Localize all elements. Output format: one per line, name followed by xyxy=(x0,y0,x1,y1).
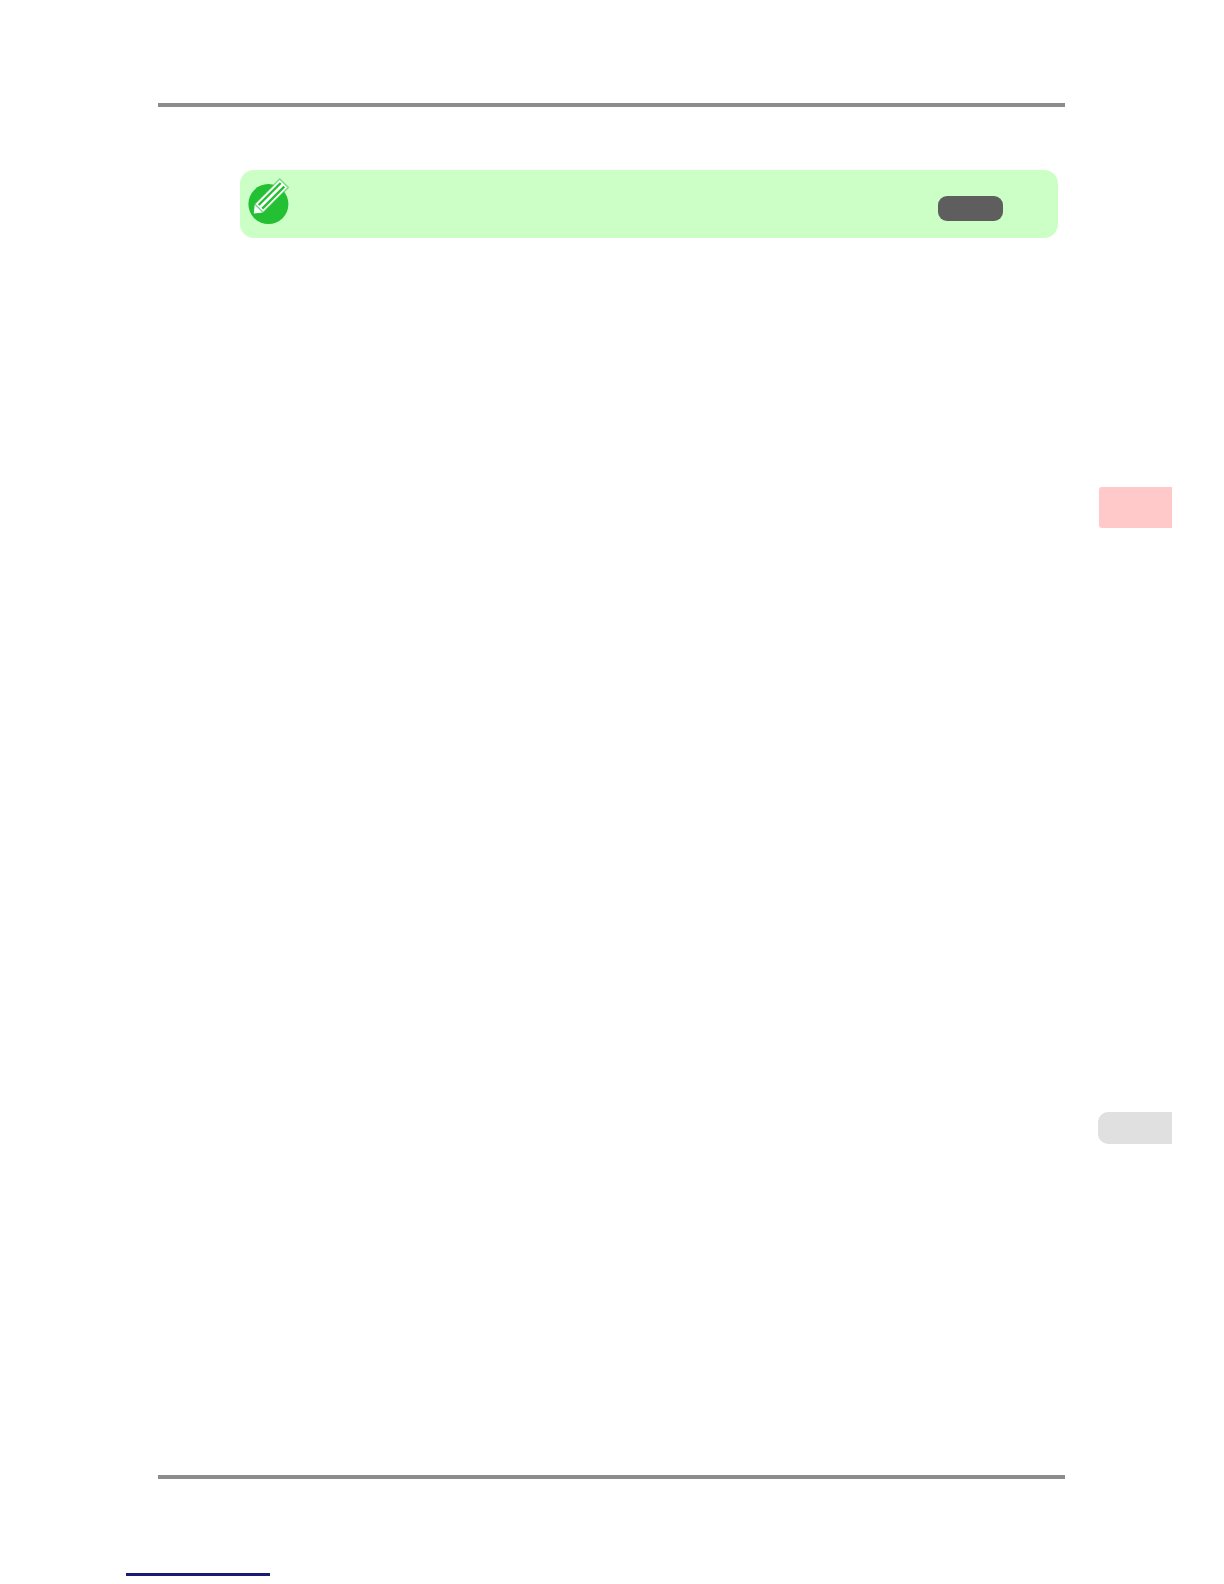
button[interactable]: Note xyxy=(240,170,1058,238)
button[interactable] xyxy=(938,196,1003,221)
button[interactable]: Note xyxy=(245,176,297,228)
button[interactable] xyxy=(1098,1112,1172,1144)
